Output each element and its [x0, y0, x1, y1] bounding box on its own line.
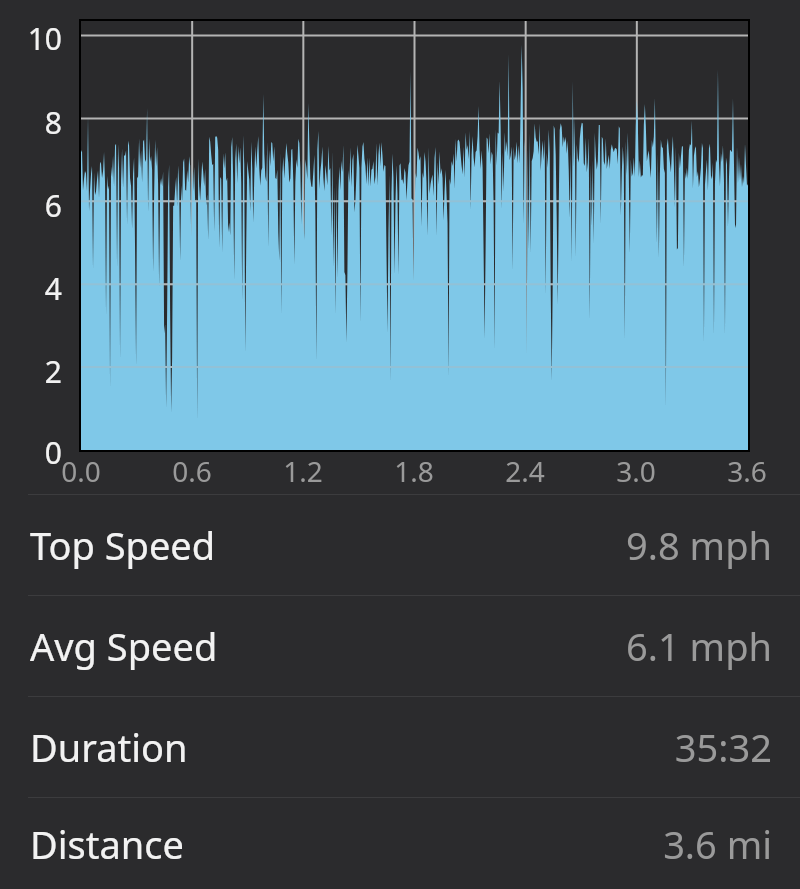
staticText: 0 [0, 432, 62, 473]
staticText: 0.0 [41, 452, 121, 490]
staticText: 2.4 [485, 452, 565, 490]
staticText: Top Speed [30, 519, 216, 571]
staticText: Distance [30, 818, 184, 870]
staticText: Duration [30, 721, 188, 773]
button[interactable]: Duration [0, 697, 800, 797]
staticText: 1.8 [374, 452, 454, 490]
staticText: 2 [0, 351, 62, 392]
staticText: 3.6 [707, 452, 787, 490]
staticText: 10 [0, 18, 62, 59]
button[interactable]: Avg Speed [0, 596, 800, 696]
staticText: 35:32 [674, 721, 772, 773]
staticText: Avg Speed [30, 620, 218, 672]
button[interactable]: Distance [0, 798, 800, 889]
staticText: 3.6 mi [663, 818, 772, 870]
staticText: 1.2 [263, 452, 343, 490]
staticText: 4 [0, 268, 62, 309]
staticText: 9.8 mph [626, 519, 772, 571]
staticText: 3.0 [596, 452, 676, 490]
staticText: 6.1 mph [626, 620, 772, 672]
staticText: 8 [0, 102, 62, 143]
staticText: 0.6 [152, 452, 232, 490]
staticText: 6 [0, 185, 62, 226]
button[interactable]: Top Speed [0, 495, 800, 595]
